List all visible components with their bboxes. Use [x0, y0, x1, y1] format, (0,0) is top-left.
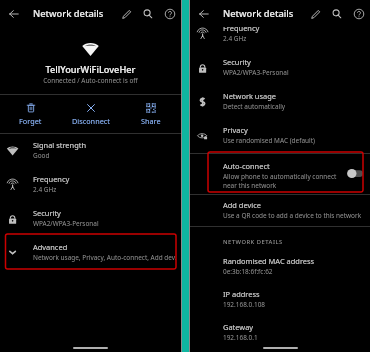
- staticText: WPA2/WPA3-Personal: [223, 68, 289, 77]
- button[interactable]: Network usage: [190, 85, 370, 119]
- staticText: IP address: [223, 289, 260, 299]
- staticText: Network details: [223, 7, 294, 20]
- button[interactable]: Gateway: [223, 322, 370, 352]
- button[interactable]: Randomised MAC address: [223, 256, 370, 289]
- button[interactable]: Security: [0, 202, 181, 236]
- button[interactable]: Edit: [118, 5, 136, 23]
- staticText: 2.4 GHz: [223, 34, 247, 43]
- button[interactable]: Forget: [0, 95, 61, 133]
- button[interactable]: Auto-connect: [190, 154, 370, 194]
- staticText: NETWORK DETAILS: [223, 238, 283, 246]
- staticText: Connected / Auto-connect is off: [0, 76, 181, 85]
- button[interactable]: IP address: [223, 289, 370, 322]
- staticText: WPA2/WPA3-Personal: [33, 219, 99, 228]
- staticText: Security: [223, 57, 251, 67]
- staticText: Randomised MAC address: [223, 256, 315, 266]
- staticText: Privacy: [223, 125, 248, 135]
- button[interactable]: Edit: [307, 5, 325, 23]
- button[interactable]: Disconnect: [61, 95, 121, 133]
- staticText: Detect automatically: [223, 102, 286, 111]
- staticText: Network usage: [223, 91, 276, 101]
- staticText: 0e:3b:18:6f:fc:62: [223, 267, 273, 276]
- staticText: Signal strength: [33, 140, 87, 150]
- staticText: Security: [33, 208, 61, 218]
- button[interactable]: Search: [328, 5, 346, 23]
- button[interactable]: Add device: [190, 195, 370, 226]
- staticText: Frequency: [33, 174, 70, 184]
- button[interactable]: Help: [350, 5, 368, 23]
- staticText: Network details: [33, 7, 104, 20]
- staticText: Share: [141, 116, 161, 126]
- button[interactable]: Signal strength: [0, 134, 181, 168]
- staticText: Allow phone to automatically connect nea…: [223, 172, 343, 190]
- staticText: 2.4 GHz: [33, 185, 57, 194]
- staticText: 192.168.0.1: [223, 333, 258, 342]
- staticText: TellYourWiFiLoveHer: [0, 63, 181, 76]
- staticText: Forget: [19, 116, 42, 126]
- staticText: Disconnect: [72, 116, 110, 126]
- button[interactable]: Privacy: [190, 119, 370, 153]
- staticText: Frequency: [223, 23, 260, 33]
- staticText: Use a QR code to add a device to this ne…: [223, 211, 362, 220]
- button[interactable]: Advanced: [0, 236, 181, 270]
- staticText: Advanced: [33, 242, 68, 252]
- button[interactable]: Frequency: [0, 168, 181, 202]
- staticText: Gateway: [223, 322, 254, 332]
- button[interactable]: Search: [139, 5, 157, 23]
- staticText: Auto-connect: [223, 161, 270, 171]
- button[interactable]: Back: [195, 5, 213, 23]
- button[interactable]: Help: [161, 5, 179, 23]
- staticText: Good: [33, 151, 50, 160]
- staticText: Network usage, Privacy, Auto-connect, Ad…: [33, 253, 177, 262]
- button[interactable]: Frequency: [190, 17, 370, 51]
- button[interactable]: Security: [190, 51, 370, 85]
- staticText: 192.168.0.108: [223, 300, 265, 309]
- staticText: Add device: [223, 200, 261, 210]
- button[interactable]: Share: [121, 95, 181, 133]
- staticText: Use randomised MAC (default): [223, 136, 315, 145]
- button[interactable]: Back: [5, 5, 23, 23]
